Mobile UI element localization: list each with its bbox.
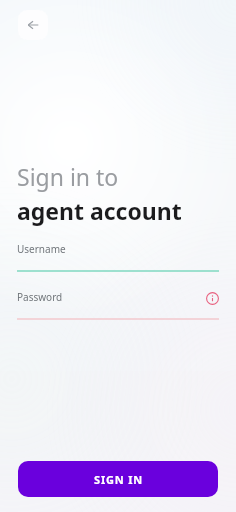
button[interactable]: Password	[17, 290, 219, 320]
button[interactable]: Back	[18, 10, 48, 40]
staticText: Password	[17, 290, 63, 304]
staticText: agent account	[17, 195, 182, 226]
staticText: Sign in to	[17, 161, 119, 192]
staticText: SIGN IN	[94, 472, 143, 487]
button[interactable]: Username	[17, 242, 219, 272]
staticText: Username	[17, 242, 66, 256]
button[interactable]: SIGN IN	[18, 461, 218, 497]
